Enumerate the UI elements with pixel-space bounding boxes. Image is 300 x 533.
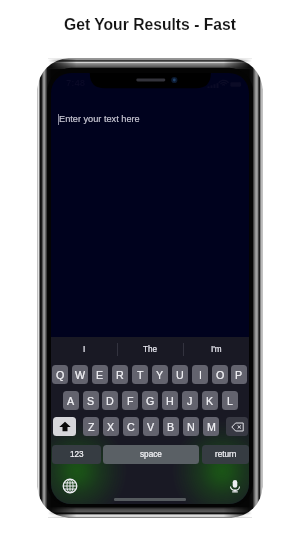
- button[interactable]: V: [143, 417, 159, 436]
- button[interactable]: space: [103, 445, 199, 464]
- button[interactable]: Shift: [53, 417, 76, 436]
- button[interactable]: 123: [52, 445, 101, 464]
- button[interactable]: C: [123, 417, 139, 436]
- staticText: I'm: [211, 345, 222, 354]
- button[interactable]: R: [112, 365, 128, 384]
- staticText: L: [227, 395, 233, 407]
- staticText: C: [127, 421, 135, 433]
- staticText: V: [147, 421, 155, 433]
- staticText: G: [146, 395, 155, 407]
- staticText: O: [216, 369, 225, 381]
- staticText: 123: [70, 450, 84, 459]
- staticText: space: [140, 450, 162, 459]
- staticText: Q: [56, 369, 65, 381]
- staticText: D: [106, 395, 114, 407]
- button[interactable]: S: [83, 391, 99, 410]
- button[interactable]: G: [142, 391, 158, 410]
- button[interactable]: return: [202, 445, 249, 464]
- staticText: M: [207, 421, 216, 433]
- staticText: W: [75, 369, 86, 381]
- staticText: B: [167, 421, 175, 433]
- button[interactable]: Change keyboard: [62, 478, 78, 494]
- staticText: T: [137, 369, 144, 381]
- button[interactable]: A: [63, 391, 79, 410]
- button[interactable]: W: [72, 365, 88, 384]
- staticText: Get Your Results - Fast: [0, 16, 300, 34]
- staticText: N: [187, 421, 195, 433]
- button[interactable]: N: [183, 417, 199, 436]
- staticText: Z: [88, 421, 95, 433]
- button[interactable]: The: [117, 337, 183, 362]
- button[interactable]: I: [192, 365, 208, 384]
- button[interactable]: Dictate: [227, 478, 243, 494]
- button[interactable]: I'm: [183, 337, 249, 362]
- staticText: R: [116, 369, 124, 381]
- button[interactable]: P: [231, 365, 247, 384]
- staticText: P: [235, 369, 243, 381]
- staticText: A: [67, 395, 75, 407]
- button[interactable]: Q: [52, 365, 68, 384]
- button[interactable]: X: [103, 417, 119, 436]
- staticText: J: [187, 395, 193, 407]
- button[interactable]: I: [51, 337, 117, 362]
- staticText: S: [87, 395, 95, 407]
- button[interactable]: L: [222, 391, 238, 410]
- button[interactable]: F: [122, 391, 138, 410]
- staticText: U: [176, 369, 184, 381]
- button[interactable]: D: [102, 391, 118, 410]
- button[interactable]: H: [162, 391, 178, 410]
- staticText: Enter your text here: [59, 114, 140, 124]
- button[interactable]: U: [172, 365, 188, 384]
- staticText: I: [83, 345, 86, 354]
- staticText: I: [199, 369, 202, 381]
- button[interactable]: B: [163, 417, 179, 436]
- staticText: X: [107, 421, 115, 433]
- button[interactable]: Y: [152, 365, 168, 384]
- staticText: E: [96, 369, 104, 381]
- button[interactable]: O: [212, 365, 228, 384]
- staticText: Y: [156, 369, 164, 381]
- staticText: return: [215, 450, 237, 459]
- button[interactable]: T: [132, 365, 148, 384]
- staticText: The: [143, 345, 158, 354]
- button[interactable]: Z: [83, 417, 99, 436]
- button[interactable]: Backspace: [226, 417, 248, 436]
- button[interactable]: K: [202, 391, 218, 410]
- button[interactable]: E: [92, 365, 108, 384]
- staticText: H: [166, 395, 174, 407]
- button[interactable]: M: [203, 417, 219, 436]
- button[interactable]: J: [182, 391, 198, 410]
- staticText: F: [127, 395, 134, 407]
- staticText: K: [206, 395, 214, 407]
